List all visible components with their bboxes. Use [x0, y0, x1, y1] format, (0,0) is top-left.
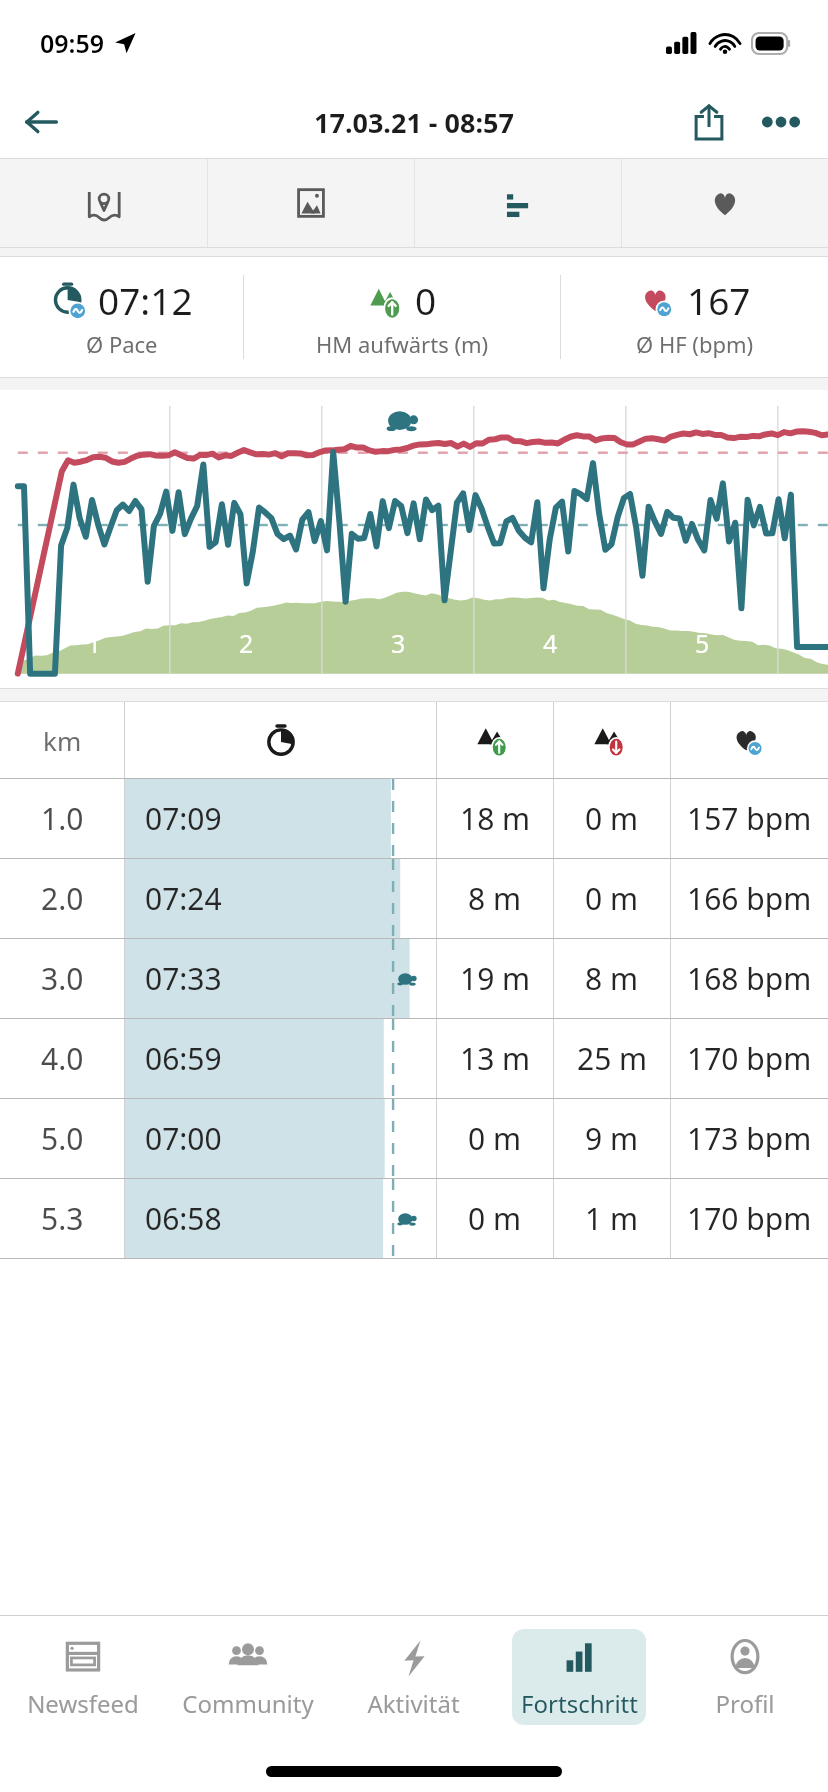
- staticText: Fortschritt: [521, 1687, 638, 1720]
- staticText: 06:59: [145, 1038, 222, 1079]
- staticText: 0 m: [468, 1198, 522, 1239]
- staticText: 170 bpm: [687, 1198, 812, 1239]
- button[interactable]: Fortschritt: [496, 1616, 662, 1738]
- button[interactable]: 4.0: [0, 1019, 828, 1098]
- button[interactable]: 0: [244, 257, 560, 377]
- staticText: 25 m: [577, 1038, 648, 1079]
- button[interactable]: Community: [165, 1616, 330, 1738]
- staticText: 166 bpm: [687, 878, 812, 919]
- staticText: 4: [543, 626, 558, 660]
- button[interactable]: Share: [680, 93, 738, 151]
- staticText: 5.3: [41, 1198, 84, 1239]
- button[interactable]: 5.3: [0, 1179, 828, 1258]
- staticText: 18 m: [460, 798, 531, 839]
- button[interactable]: More options: [752, 93, 810, 151]
- staticText: 2.0: [41, 878, 84, 919]
- staticText: 5: [695, 626, 710, 660]
- button[interactable]: Newsfeed: [0, 1616, 165, 1738]
- button[interactable]: 5.0: [0, 1099, 828, 1178]
- staticText: km: [43, 723, 82, 758]
- staticText: 0 m: [468, 1118, 522, 1159]
- button[interactable]: Profil: [662, 1616, 828, 1738]
- staticText: Aktivität: [367, 1687, 460, 1720]
- staticText: 5.0: [41, 1118, 84, 1159]
- staticText: 0 m: [585, 798, 639, 839]
- staticText: 9 m: [585, 1118, 639, 1159]
- staticText: 8 m: [585, 958, 639, 999]
- staticText: Community: [182, 1687, 314, 1720]
- button[interactable]: 3.0: [0, 939, 828, 1018]
- staticText: Newsfeed: [27, 1687, 139, 1720]
- staticText: 07:33: [145, 958, 222, 999]
- staticText: 2: [239, 626, 254, 660]
- staticText: HM aufwärts (m): [316, 329, 489, 359]
- staticText: 170 bpm: [687, 1038, 812, 1079]
- staticText: 4.0: [41, 1038, 84, 1079]
- staticText: Ø Pace: [86, 329, 158, 359]
- button[interactable]: Map: [0, 159, 207, 247]
- staticText: 0: [415, 275, 437, 325]
- button[interactable]: Back: [12, 93, 70, 151]
- staticText: Profil: [715, 1687, 775, 1720]
- staticText: 06:58: [145, 1198, 222, 1239]
- staticText: 168 bpm: [687, 958, 812, 999]
- button[interactable]: Aktivität: [330, 1616, 496, 1738]
- button[interactable]: Photos: [208, 159, 414, 247]
- button[interactable]: 2.0: [0, 859, 828, 938]
- staticText: 07:24: [145, 878, 222, 919]
- staticText: 0 m: [585, 878, 639, 919]
- staticText: 17.03.21 - 08:57: [314, 104, 514, 141]
- staticText: 07:00: [145, 1118, 222, 1159]
- button[interactable]: 07:12: [0, 257, 243, 377]
- staticText: 3: [391, 626, 406, 660]
- staticText: 167: [687, 275, 751, 325]
- staticText: 8 m: [468, 878, 522, 919]
- staticText: 13 m: [460, 1038, 531, 1079]
- button[interactable]: Heart rate: [622, 159, 828, 247]
- button[interactable]: Statistics: [415, 159, 621, 247]
- button[interactable]: 167: [561, 257, 828, 377]
- staticText: 09:59: [40, 26, 105, 60]
- staticText: 1 m: [585, 1198, 639, 1239]
- staticText: Ø HF (bpm): [636, 329, 754, 359]
- staticText: 173 bpm: [687, 1118, 812, 1159]
- staticText: 3.0: [41, 958, 84, 999]
- button[interactable]: 1.0: [0, 779, 828, 858]
- staticText: 1.0: [41, 798, 84, 839]
- staticText: 1: [87, 626, 102, 660]
- staticText: 07:12: [98, 275, 193, 325]
- staticText: 19 m: [460, 958, 531, 999]
- staticText: 157 bpm: [687, 798, 812, 839]
- staticText: 07:09: [145, 798, 222, 839]
